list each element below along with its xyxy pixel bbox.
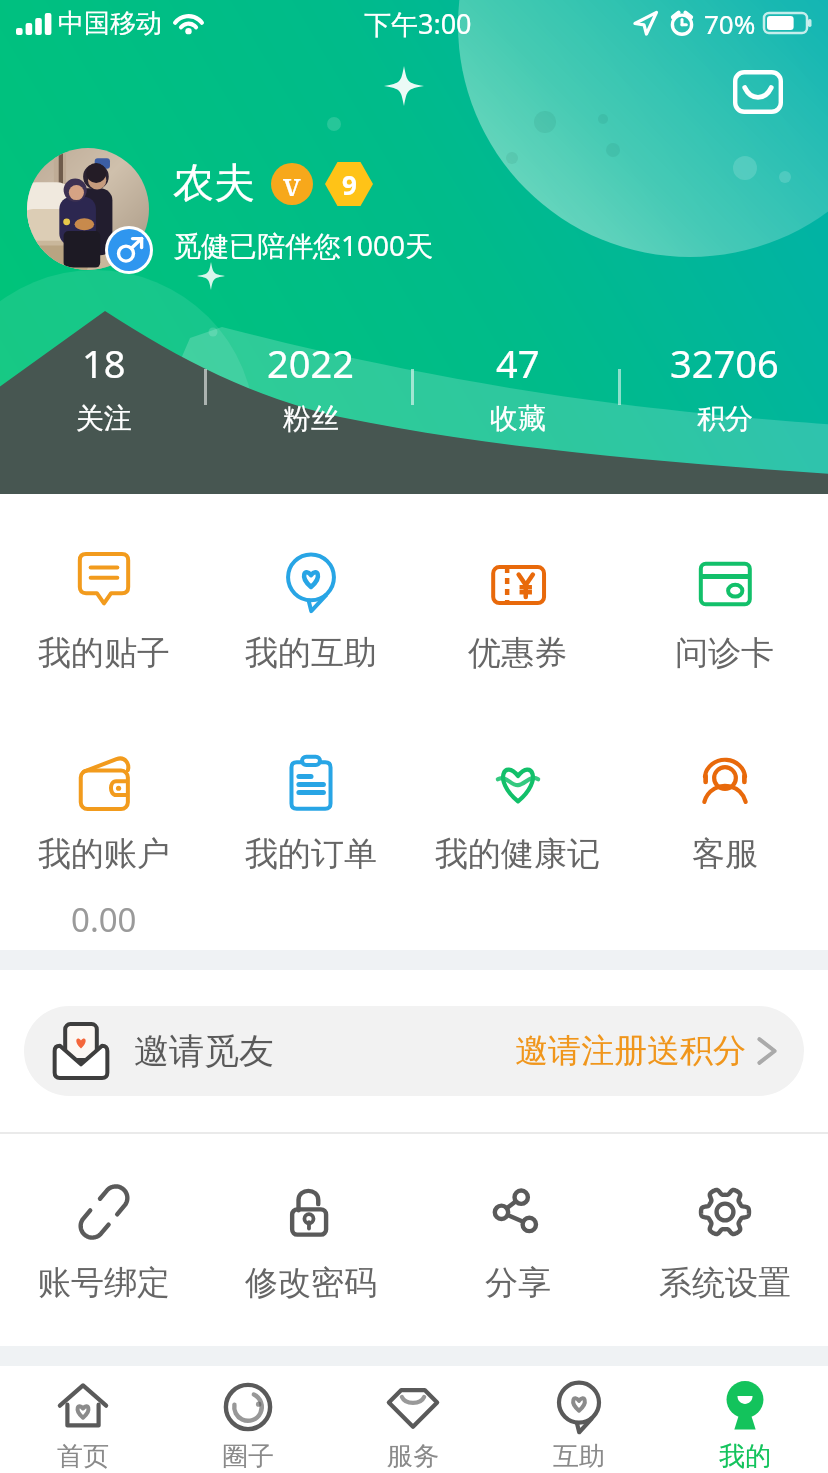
staticText: 圈子 [222,1440,274,1473]
button[interactable]: 我的贴子 [0,551,207,674]
button[interactable]: Messages [717,56,799,128]
staticText: 邀请注册送积分 [515,1030,746,1072]
staticText: 我的账户 [38,833,170,875]
button[interactable]: 修改密码 [207,1183,414,1304]
staticText: 我的贴子 [38,632,170,674]
staticText: 账号绑定 [38,1262,170,1304]
button[interactable]: 32706 [621,337,828,447]
staticText: 32706 [670,337,779,389]
button[interactable]: 我的账户 [0,752,207,942]
button[interactable]: 2022 [207,337,414,447]
staticText: 客服 [692,833,758,875]
button[interactable]: 系统设置 [621,1183,828,1304]
button[interactable]: 优惠券 [414,551,621,674]
staticText: 农夫 [173,158,255,210]
staticText: 我的健康记 [435,833,600,875]
staticText: 首页 [57,1440,109,1473]
staticText: 我的 [719,1440,771,1473]
staticText: 互助 [553,1440,605,1473]
staticText: 关注 [76,401,132,436]
staticText: 系统设置 [659,1262,791,1304]
staticText: 问诊卡 [675,632,774,674]
button[interactable]: 我的健康记 [414,752,621,875]
staticText: 2022 [267,337,354,389]
button[interactable]: 我的订单 [207,752,414,875]
button[interactable]: 邀请觅友 [24,1006,804,1096]
staticText: 我的互助 [245,632,377,674]
staticText: 服务 [387,1440,439,1473]
staticText: 0.00 [71,897,137,942]
staticText: 18 [82,337,126,389]
button[interactable]: 我的 [662,1366,828,1473]
button[interactable]: 服务 [330,1366,496,1473]
staticText: 觅健已陪伴您1000天 [173,226,434,264]
staticText: 下午3:00 [364,5,472,42]
staticText: v [283,164,301,205]
button[interactable]: 首页 [0,1366,165,1473]
staticText: 收藏 [490,401,546,436]
staticText: 9 [342,167,357,202]
button[interactable]: 分享 [414,1183,621,1304]
staticText: 积分 [697,401,753,436]
button[interactable]: 47 [414,337,621,447]
button[interactable]: 客服 [621,752,828,875]
button[interactable]: 账号绑定 [0,1183,207,1304]
staticText: 70% [704,6,756,41]
staticText: 我的订单 [245,833,377,875]
staticText: 粉丝 [283,401,339,436]
button[interactable]: 问诊卡 [621,551,828,674]
button[interactable]: 圈子 [165,1366,330,1473]
button[interactable]: 互助 [496,1366,662,1473]
staticText: 修改密码 [245,1262,377,1304]
staticText: 分享 [485,1262,551,1304]
staticText: 47 [496,337,540,389]
staticText: 优惠券 [468,632,567,674]
button[interactable]: 18 [0,337,207,447]
button[interactable]: 我的互助 [207,551,414,674]
staticText: 邀请觅友 [134,1029,274,1073]
staticText: 中国移动 [58,7,162,40]
